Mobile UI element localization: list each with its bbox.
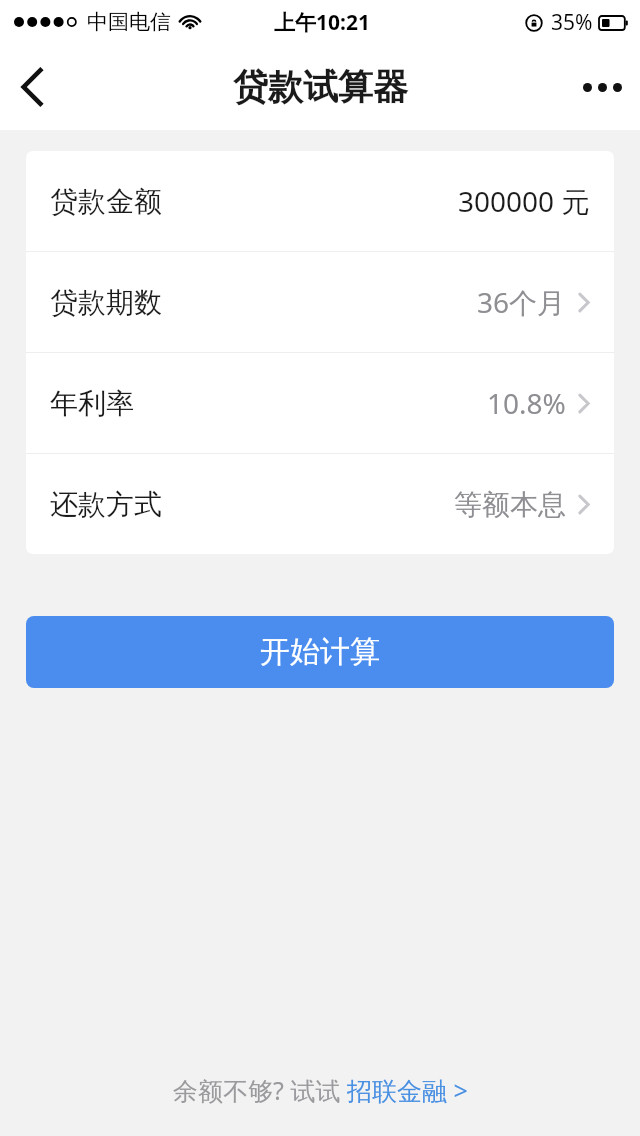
staticText: 招联金融 > bbox=[347, 1073, 468, 1107]
staticText: 余额不够? 试试 bbox=[173, 1073, 347, 1107]
staticText: 等额本息 bbox=[454, 487, 566, 522]
staticText: 还款方式 bbox=[50, 487, 162, 522]
button[interactable]: More options bbox=[564, 55, 640, 119]
staticText: 年利率 bbox=[50, 386, 134, 421]
staticText: 贷款期数 bbox=[50, 285, 162, 320]
button[interactable]: Back bbox=[0, 55, 64, 119]
button[interactable]: 年利率 bbox=[26, 353, 614, 453]
staticText: 300000 元 bbox=[458, 182, 590, 220]
staticText: 中国电信 bbox=[87, 9, 171, 35]
staticText: 36个月 bbox=[477, 283, 566, 321]
staticText: 10.8% bbox=[487, 384, 566, 422]
button[interactable]: 贷款期数 bbox=[26, 252, 614, 352]
staticText: 上午10:21 bbox=[274, 8, 370, 37]
button[interactable]: 余额不够? 试试 bbox=[0, 1044, 640, 1136]
button[interactable]: 开始计算 bbox=[26, 616, 614, 688]
staticText: 开始计算 bbox=[260, 633, 380, 671]
staticText: 35% bbox=[551, 8, 593, 37]
button[interactable]: 还款方式 bbox=[26, 454, 614, 554]
staticText: 贷款试算器 bbox=[233, 65, 408, 109]
staticText: 贷款金额 bbox=[50, 184, 162, 219]
button[interactable]: 贷款金额 bbox=[26, 151, 614, 251]
